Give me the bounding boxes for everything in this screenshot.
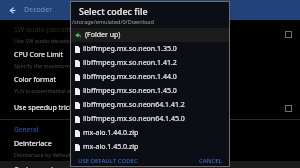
button[interactable]: Folder up — [70, 28, 230, 42]
staticText: mx-aio.1.45.0.zip — [83, 142, 139, 152]
staticText: libffmpeg.mx.so.neon.1.44.0 — [83, 72, 177, 82]
staticText: (Folder up) — [85, 30, 121, 40]
button[interactable]: Toggle SW audio (decoding) — [285, 31, 292, 38]
staticText: libffmpeg.mx.so.neon.1.45.0 — [83, 86, 177, 96]
button[interactable]: libffmpeg.mx.so.neon.1.41.2 — [70, 56, 230, 70]
staticText: Select codec file — [79, 5, 148, 17]
button[interactable]: SW audio (decoding) — [0, 22, 300, 47]
staticText: USE DEFAULT CODEC — [78, 157, 138, 165]
button[interactable]: mx-aio.1.44.0.zip — [70, 126, 230, 140]
staticText: Deinterlace — [14, 139, 52, 149]
staticText: CANCEL — [199, 157, 222, 165]
staticText: /storage/emulated/0/Download — [72, 18, 154, 25]
button[interactable]: Custom codec — [0, 161, 300, 168]
button[interactable]: Color format — [0, 72, 300, 97]
staticText: Color format — [14, 75, 56, 85]
staticText: libffmpeg.mx.so.neon.1.35.0 — [83, 44, 177, 54]
staticText: General — [14, 125, 39, 134]
button[interactable]: Deinterlace — [0, 136, 300, 161]
button[interactable]: Back — [0, 0, 24, 20]
button[interactable]: libffmpeg.mx.so.neon.1.35.0 — [70, 42, 230, 56]
button[interactable]: libffmpeg.mx.so.neon64.1.45.0 — [70, 112, 230, 126]
button[interactable]: Toggle Use speedup tricks — [285, 105, 292, 112]
button[interactable]: Use speedup tricks — [0, 97, 300, 119]
staticText: Use SW audio decoder for… — [14, 37, 85, 44]
staticText: libffmpeg.mx.so.neon64.1.41.2 — [83, 100, 185, 110]
button[interactable]: libffmpeg.mx.so.neon64.1.41.2 — [70, 98, 230, 112]
staticText: Decoder — [24, 5, 53, 15]
staticText: libffmpeg.mx.so.neon.1.41.2 — [83, 58, 177, 68]
button[interactable]: CANCEL — [196, 156, 225, 166]
button[interactable]: libffmpeg.mx.so.neon.1.45.0 — [70, 84, 230, 98]
button[interactable]: CPU Core Limit — [0, 47, 300, 72]
staticText: mx-aio.1.44.0.zip — [83, 128, 139, 138]
staticText: CPU Core Limit — [14, 50, 64, 60]
staticText: Use speedup tricks — [14, 103, 77, 113]
staticText: Specify the maximum nu… — [14, 62, 83, 69]
button[interactable]: mx-aio.1.45.0.zip — [70, 140, 230, 154]
staticText: Deinterlace by default. O… — [14, 151, 83, 158]
other: Folder up — [74, 31, 82, 39]
staticText: YUV is experimental and… — [14, 87, 82, 94]
button[interactable]: libffmpeg.mx.so.neon.1.44.0 — [70, 70, 230, 84]
staticText: libffmpeg.mx.so.neon64.1.45.0 — [83, 114, 185, 124]
staticText: SW audio (decoding) — [14, 25, 82, 35]
staticText: Custom codec — [14, 165, 61, 168]
button[interactable]: USE DEFAULT CODEC — [75, 156, 141, 166]
